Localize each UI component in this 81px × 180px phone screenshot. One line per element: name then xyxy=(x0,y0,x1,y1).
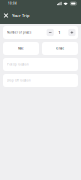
button[interactable]: Drop Off location xyxy=(3,74,78,87)
staticText: Pick Up location xyxy=(7,63,29,66)
button[interactable]: Female xyxy=(42,42,78,55)
button[interactable]: Pick Up location xyxy=(3,58,78,71)
button[interactable]: Decrease number of places xyxy=(47,29,54,36)
staticText: 1 xyxy=(58,30,60,35)
staticText: Male xyxy=(18,47,24,50)
button[interactable]: Male xyxy=(3,42,39,55)
button[interactable]: Increase number of places xyxy=(68,29,75,36)
staticText: 10:04 xyxy=(8,2,17,5)
staticText: Female xyxy=(55,47,64,50)
staticText: Drop Off location xyxy=(7,79,31,82)
staticText: Your Trip xyxy=(12,13,30,18)
staticText: Number of places xyxy=(7,31,31,34)
button[interactable]: Close xyxy=(2,11,10,19)
